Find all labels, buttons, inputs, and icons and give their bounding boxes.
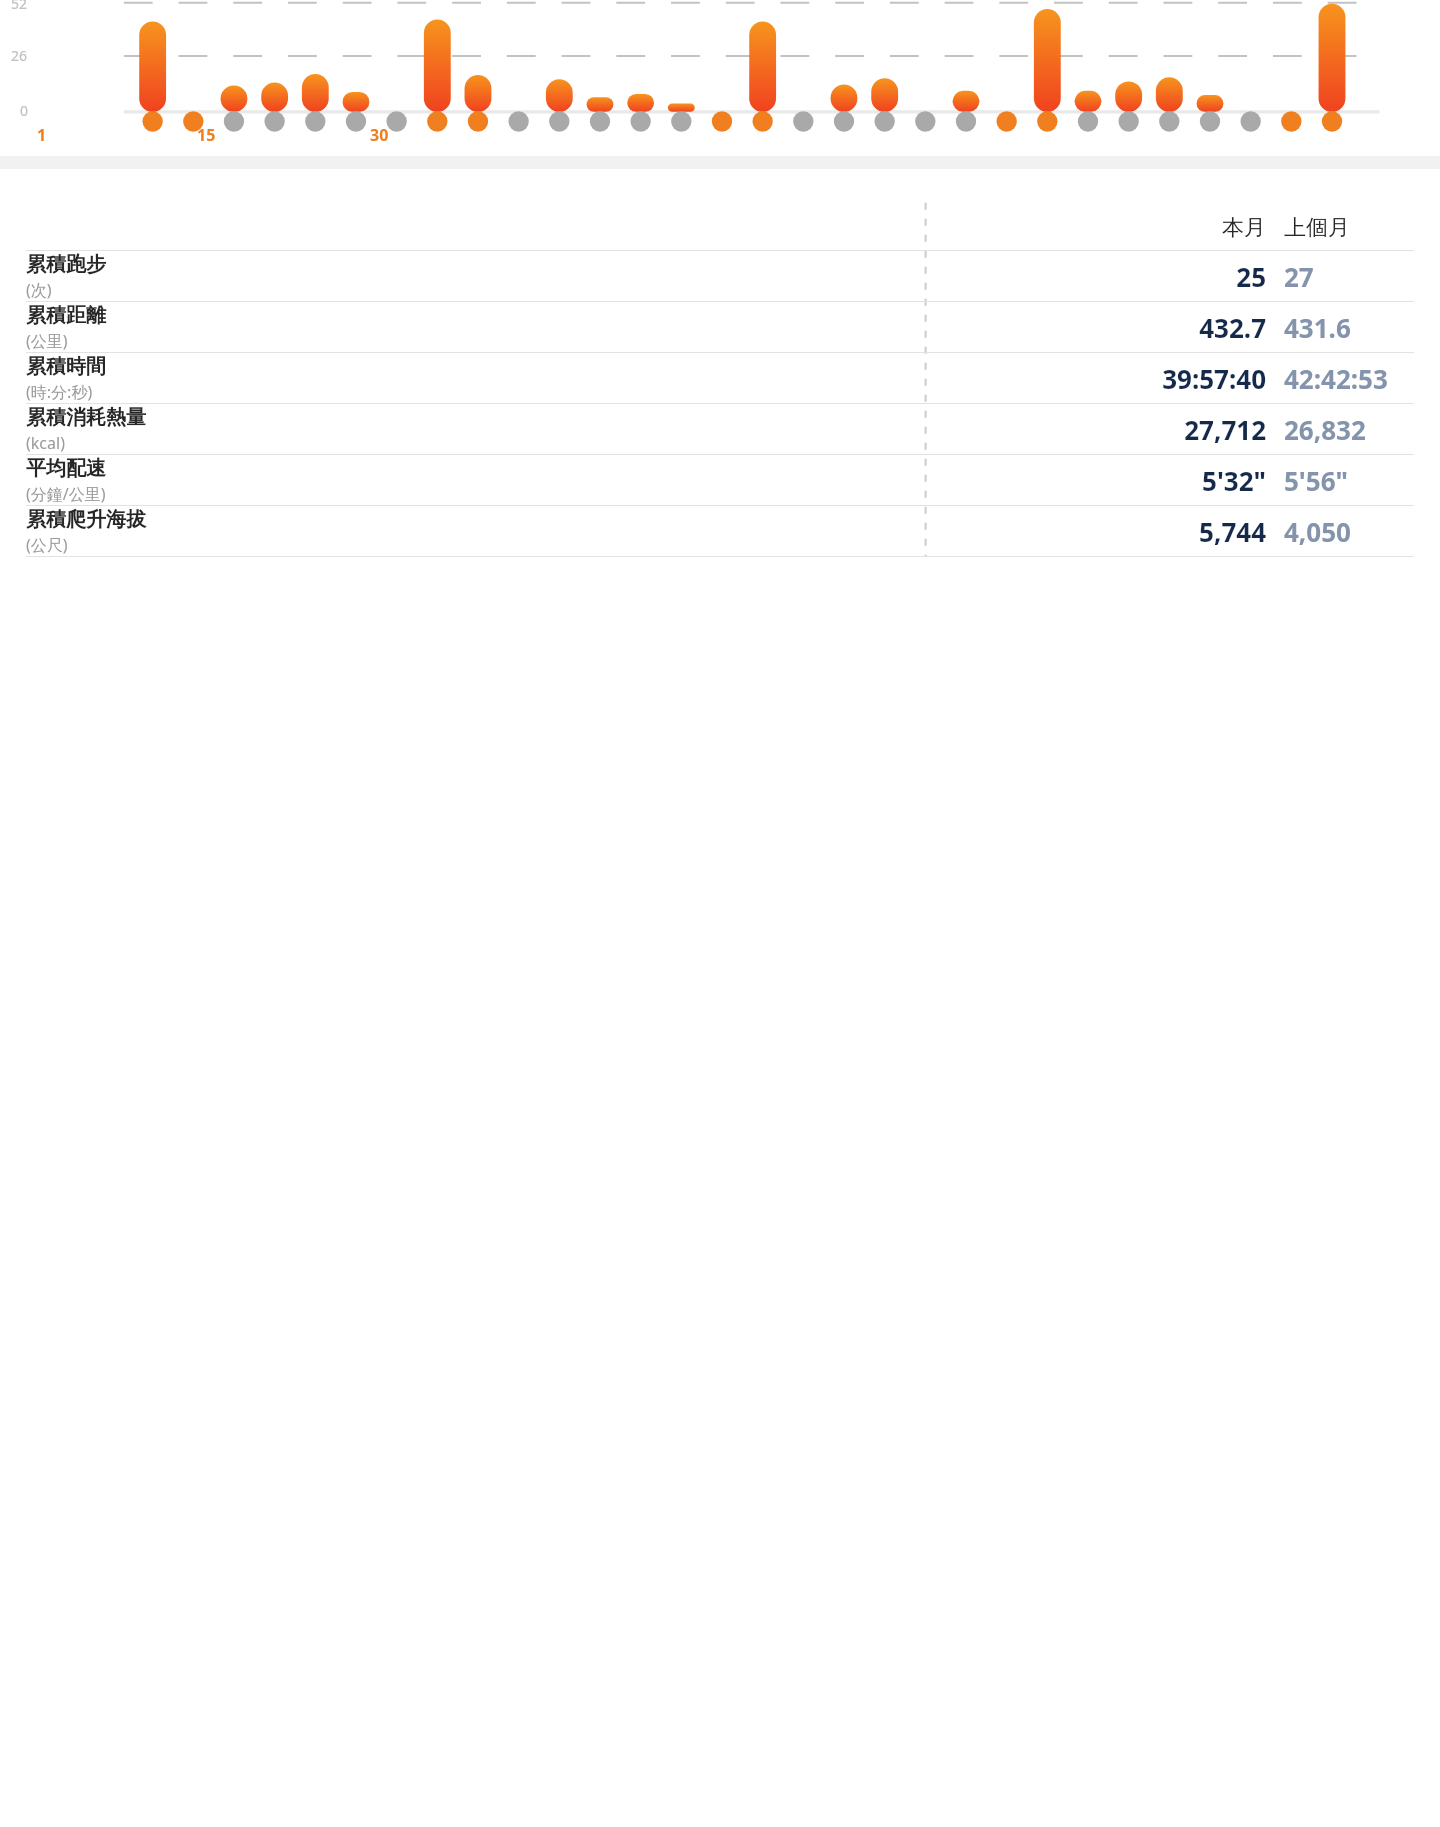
staticText: 累積爬升海拔 — [26, 507, 146, 532]
staticText: 4,050 — [1284, 514, 1414, 549]
button[interactable]: 累積跑步 — [11, 251, 1429, 301]
staticText: 15 — [197, 124, 216, 146]
staticText: (公尺) — [26, 534, 68, 556]
staticText: 累積消耗熱量 — [26, 405, 146, 430]
staticText: 42:42:53 — [1284, 361, 1414, 396]
button[interactable]: Monthly running chart — [0, 0, 1440, 156]
staticText: 5'56" — [1284, 463, 1414, 498]
button[interactable]: 累積消耗熱量 — [11, 404, 1429, 454]
staticText: 累積跑步 — [26, 252, 106, 277]
staticText: 432.7 — [1158, 310, 1266, 345]
staticText: 上個月 — [1284, 214, 1414, 242]
button[interactable]: 累積距離 — [11, 302, 1429, 352]
staticText: 27 — [1284, 259, 1414, 294]
staticText: 39:57:40 — [1158, 361, 1266, 396]
button[interactable]: 累積爬升海拔 — [11, 506, 1429, 556]
staticText: 431.6 — [1284, 310, 1414, 345]
button[interactable]: 累積時間 — [11, 353, 1429, 403]
staticText: (次) — [26, 279, 52, 301]
staticText: (時:分:秒) — [26, 381, 93, 403]
staticText: 25 — [1158, 259, 1266, 294]
staticText: 累積距離 — [26, 303, 106, 328]
staticText: (分鐘/公里) — [26, 483, 106, 505]
staticText: 30 — [370, 124, 389, 146]
staticText: 累積時間 — [26, 354, 106, 379]
staticText: 5,744 — [1158, 514, 1266, 549]
staticText: 5'32" — [1158, 463, 1266, 498]
staticText: 本月 — [1158, 214, 1266, 242]
staticText: 26,832 — [1284, 412, 1414, 447]
staticText: 26 — [11, 46, 28, 65]
staticText: (kcal) — [26, 432, 65, 454]
staticText: 0 — [20, 101, 29, 120]
staticText: 52 — [11, 0, 28, 13]
staticText: 1 — [37, 124, 47, 146]
button[interactable]: 平均配速 — [11, 455, 1429, 505]
staticText: 27,712 — [1158, 412, 1266, 447]
staticText: (公里) — [26, 330, 68, 352]
staticText: 平均配速 — [26, 456, 106, 481]
